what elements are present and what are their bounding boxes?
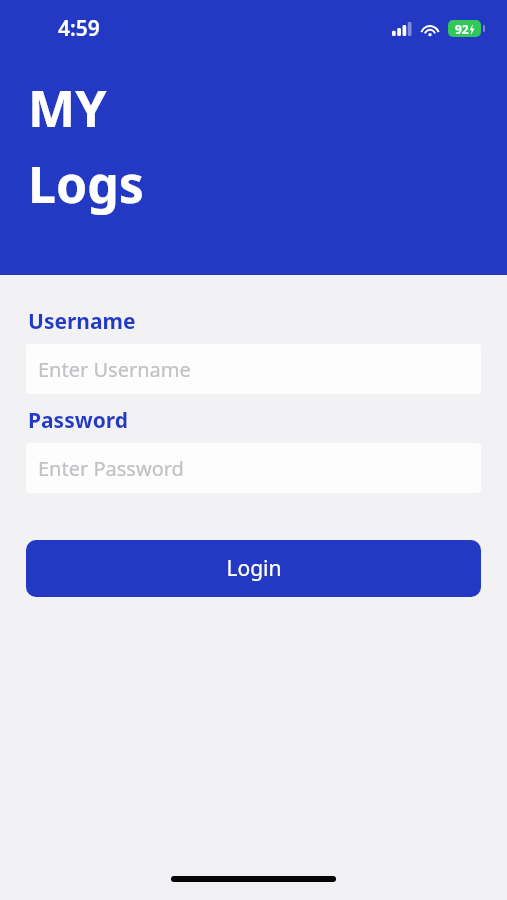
staticText: Logs — [28, 150, 144, 218]
button[interactable]: Enter Username — [26, 344, 481, 394]
staticText: Username — [28, 307, 136, 336]
button[interactable]: Enter Password — [26, 443, 481, 493]
staticText: Enter Password — [38, 455, 184, 482]
staticText: MY — [28, 74, 107, 142]
staticText: 4:59 — [58, 14, 100, 43]
button[interactable]: Login — [26, 540, 481, 597]
staticText: Login — [226, 554, 282, 583]
staticText: Password — [28, 406, 129, 435]
staticText: 92 — [455, 21, 469, 37]
staticText: Enter Username — [38, 356, 191, 383]
